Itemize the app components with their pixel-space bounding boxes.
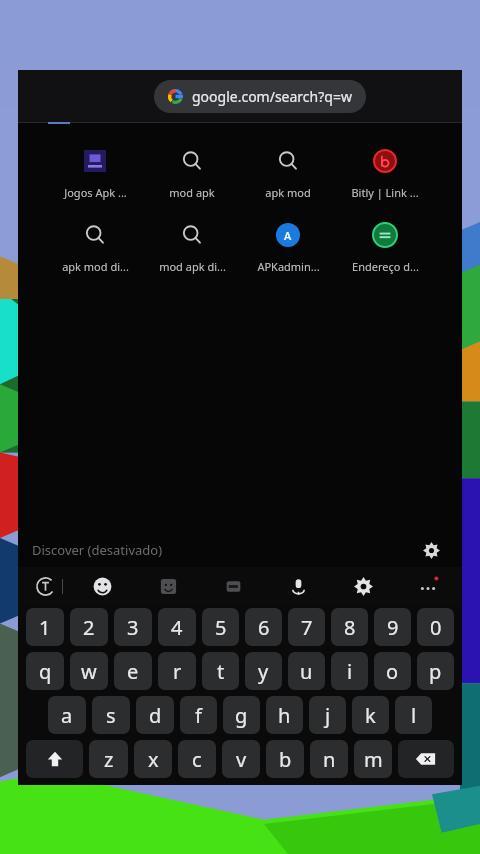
staticText: u (300, 658, 313, 685)
button[interactable]: Voice input (283, 571, 313, 601)
button[interactable]: google.com/search?q=w (154, 80, 366, 113)
button[interactable]: Stickers (153, 571, 183, 601)
button[interactable]: A (245, 220, 331, 276)
staticText: A (284, 228, 292, 243)
button[interactable]: l (395, 696, 432, 734)
staticText: s (106, 702, 116, 729)
button[interactable]: p (417, 652, 454, 690)
button[interactable]: a (48, 696, 86, 734)
staticText: APKadmin... (257, 259, 320, 274)
staticText: 8 (344, 614, 356, 641)
staticText: 9 (387, 614, 399, 641)
staticText: j (325, 702, 331, 729)
button[interactable]: k (352, 696, 389, 734)
button[interactable]: 3 (114, 608, 152, 646)
button[interactable]: d (136, 696, 174, 734)
button[interactable]: apk mod (245, 146, 331, 202)
button[interactable]: o (374, 652, 411, 690)
button[interactable]: v (222, 740, 260, 778)
staticText: Discover (desativado) (32, 541, 163, 559)
staticText: b (279, 746, 292, 773)
button[interactable]: f (180, 696, 217, 734)
staticText: r (173, 658, 182, 685)
staticText: f (195, 702, 202, 729)
button[interactable]: Shift (26, 740, 83, 778)
staticText: y (258, 658, 269, 685)
button[interactable]: Backspace (398, 740, 454, 778)
staticText: 0 (430, 614, 442, 641)
button[interactable]: GIF (218, 571, 248, 601)
button[interactable]: mod apk di... (149, 220, 235, 276)
button[interactable]: More options (413, 571, 443, 601)
button[interactable]: Translate (30, 571, 60, 601)
button[interactable]: 8 (331, 608, 368, 646)
staticText: m (364, 746, 383, 773)
button[interactable]: i (331, 652, 368, 690)
button[interactable]: 9 (374, 608, 411, 646)
staticText: 6 (258, 614, 270, 641)
staticText: 3 (127, 614, 139, 641)
staticText: mod apk di... (159, 259, 226, 274)
button[interactable]: apk mod di... (52, 220, 138, 276)
staticText: 4 (171, 614, 183, 641)
button[interactable]: z (89, 740, 128, 778)
button[interactable]: r (158, 652, 196, 690)
staticText: 1 (39, 614, 51, 641)
button[interactable]: y (245, 652, 282, 690)
staticText: i (347, 658, 353, 685)
staticText: p (429, 658, 442, 685)
staticText: l (411, 702, 417, 729)
staticText: o (386, 658, 399, 685)
button[interactable]: g (223, 696, 260, 734)
staticText: k (365, 702, 376, 729)
staticText: c (192, 746, 202, 773)
button[interactable]: n (310, 740, 348, 778)
staticText: Jogos Apk ... (64, 185, 127, 200)
button[interactable]: b (266, 740, 304, 778)
button[interactable]: 7 (288, 608, 325, 646)
button[interactable]: t (202, 652, 239, 690)
button[interactable]: mod apk (149, 146, 235, 202)
button[interactable]: 0 (417, 608, 454, 646)
staticText: 5 (215, 614, 227, 641)
button[interactable]: Bitly | Link ... (342, 146, 428, 202)
button[interactable]: j (309, 696, 346, 734)
button[interactable]: w (70, 652, 108, 690)
staticText: apk mod (265, 185, 311, 200)
staticText: d (149, 702, 162, 729)
button[interactable]: 4 (158, 608, 196, 646)
button[interactable]: q (26, 652, 64, 690)
staticText: x (148, 746, 159, 773)
button[interactable]: m (354, 740, 392, 778)
staticText: n (323, 746, 336, 773)
button[interactable]: s (92, 696, 130, 734)
staticText: 7 (301, 614, 313, 641)
button[interactable]: 5 (202, 608, 239, 646)
staticText: apk mod di... (62, 259, 129, 274)
staticText: a (61, 702, 73, 729)
staticText: Endereço d... (352, 259, 419, 274)
staticText: Bitly | Link ... (351, 185, 419, 200)
button[interactable]: c (178, 740, 216, 778)
button[interactable]: Discover settings (416, 535, 446, 565)
staticText: w (81, 658, 97, 685)
button[interactable]: Endereço d... (342, 220, 428, 276)
staticText: v (236, 746, 247, 773)
staticText: e (127, 658, 139, 685)
staticText: g (235, 702, 248, 729)
button[interactable]: u (288, 652, 325, 690)
staticText: t (217, 658, 225, 685)
button[interactable]: x (134, 740, 172, 778)
button[interactable]: 1 (26, 608, 64, 646)
button[interactable]: Keyboard settings (348, 571, 378, 601)
button[interactable]: e (114, 652, 152, 690)
staticText: 2 (83, 614, 95, 641)
button[interactable]: Emoji (87, 571, 117, 601)
button[interactable]: 6 (245, 608, 282, 646)
staticText: google.com/search?q=w (192, 87, 352, 106)
staticText: q (39, 658, 52, 685)
staticText: z (104, 746, 114, 773)
button[interactable]: Jogos Apk ... (52, 146, 138, 202)
button[interactable]: 2 (70, 608, 108, 646)
button[interactable]: h (266, 696, 303, 734)
